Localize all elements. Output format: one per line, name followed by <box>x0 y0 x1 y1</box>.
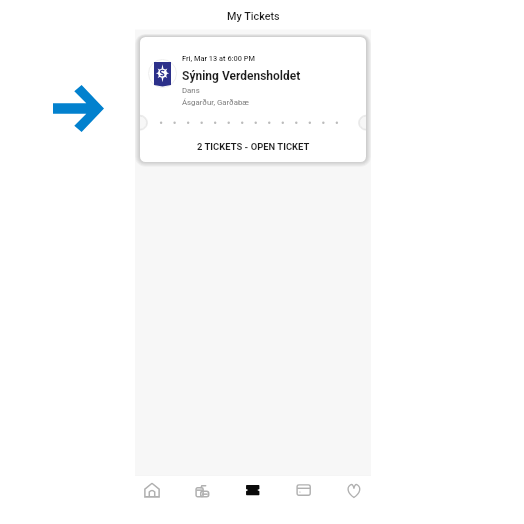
button[interactable]: Payment cards <box>284 470 324 510</box>
button[interactable]: Home <box>132 470 172 510</box>
staticText: Dans <box>182 86 200 95</box>
staticText: My Tickets <box>227 10 280 23</box>
button[interactable]: Favourites <box>334 470 374 510</box>
staticText: Sýning Verdensholdet <box>182 69 301 83</box>
button[interactable]: 2 TICKETS - OPEN TICKET <box>140 130 366 162</box>
staticText: 2 TICKETS - OPEN TICKET <box>197 141 310 152</box>
button[interactable]: Food and drinks <box>182 470 222 510</box>
staticText: Fri, Mar 13 at 6:00 PM <box>182 54 255 63</box>
button[interactable]: Fri, Mar 13 at 6:00 PM <box>140 37 366 162</box>
button[interactable]: Tickets <box>233 470 273 510</box>
staticText: Ásgarður, Garðabæ <box>182 98 249 107</box>
